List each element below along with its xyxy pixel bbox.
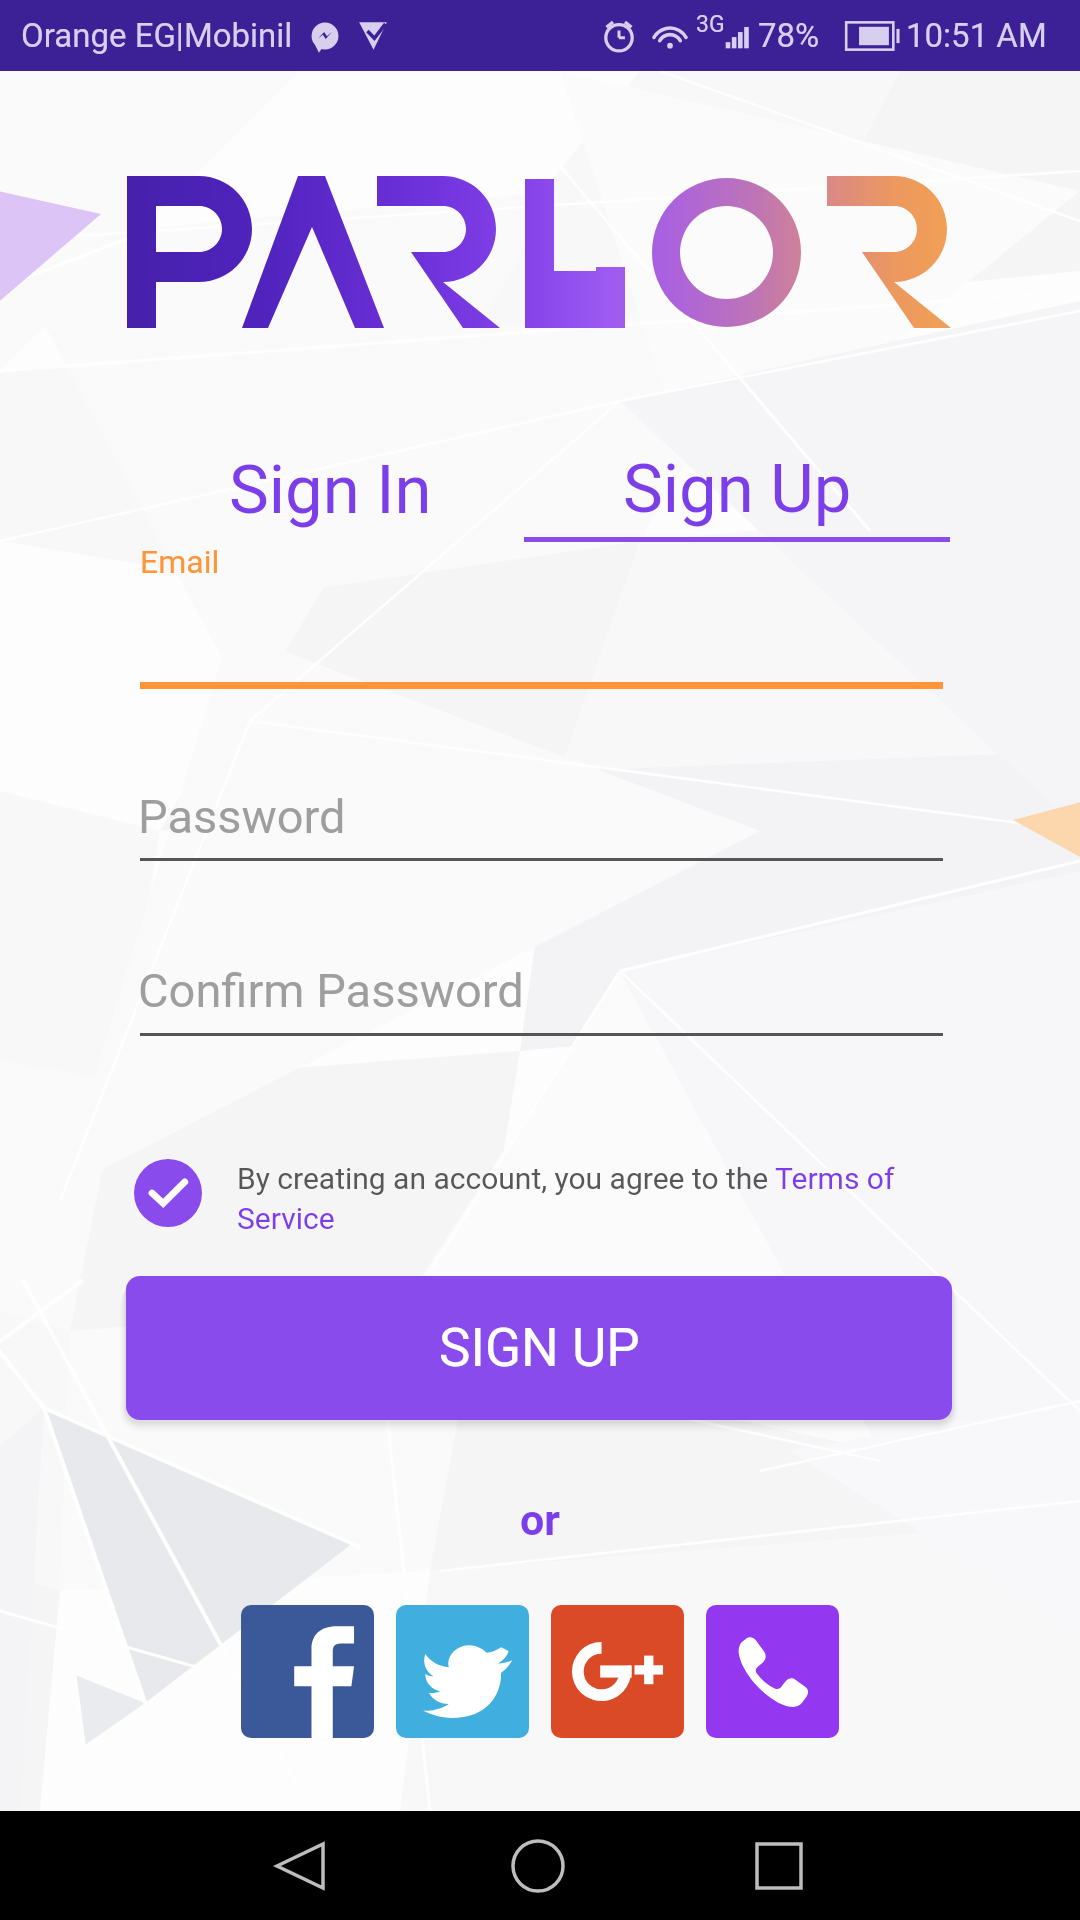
button[interactable]: Recent apps xyxy=(725,1811,833,1920)
staticText: Email xyxy=(140,543,220,581)
staticText: By creating an account, you agree to the… xyxy=(237,1161,913,1236)
staticText: SIGN UP xyxy=(439,1317,640,1379)
button[interactable]: Back xyxy=(246,1811,354,1920)
button[interactable]: Sign up with phone xyxy=(706,1605,839,1738)
staticText: Sign In xyxy=(229,451,432,530)
staticText: Orange EG|Mobinil xyxy=(21,16,293,55)
button[interactable]: Sign up with Twitter xyxy=(396,1605,529,1738)
staticText: Password xyxy=(138,789,346,844)
button[interactable]: Home xyxy=(484,1811,592,1920)
button[interactable]: Sign In xyxy=(140,450,520,530)
button[interactable]: Sign up with Google Plus xyxy=(551,1605,684,1738)
button[interactable]: Sign up with Facebook xyxy=(241,1605,374,1738)
button[interactable]: Agree to terms xyxy=(134,1159,202,1227)
staticText: 10:51 AM xyxy=(906,16,1047,55)
staticText: Sign Up xyxy=(623,450,852,529)
staticText: 3G xyxy=(696,11,725,38)
staticText: Confirm Password xyxy=(138,963,524,1018)
button[interactable]: Sign Up xyxy=(524,450,950,542)
staticText: or xyxy=(0,1495,1080,1545)
button[interactable]: SIGN UP xyxy=(126,1276,952,1420)
staticText: 78% xyxy=(758,16,820,55)
